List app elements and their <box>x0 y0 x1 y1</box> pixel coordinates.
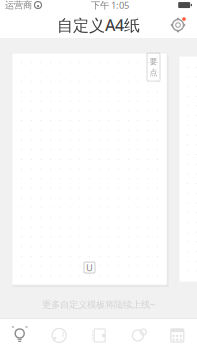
button[interactable]: 日历 <box>158 319 197 350</box>
staticText: U <box>86 261 93 274</box>
button[interactable]: 设置 <box>165 12 191 38</box>
button[interactable]: 自定义A4纸模板 <box>12 53 167 285</box>
button[interactable]: 灵感 <box>0 319 39 350</box>
button[interactable]: 笔记 <box>79 319 118 350</box>
button[interactable]: 社区 <box>118 319 158 350</box>
staticText: 更多自定义模板将陆续上线~ <box>42 298 155 310</box>
staticText: 点 <box>149 68 157 77</box>
staticText: 要 <box>149 57 157 66</box>
staticText: 自定义A4纸 <box>57 14 140 36</box>
staticText: 下午 1:05 <box>91 0 129 11</box>
button[interactable]: 音乐 <box>39 319 79 350</box>
staticText: 运营商 <box>5 0 32 11</box>
